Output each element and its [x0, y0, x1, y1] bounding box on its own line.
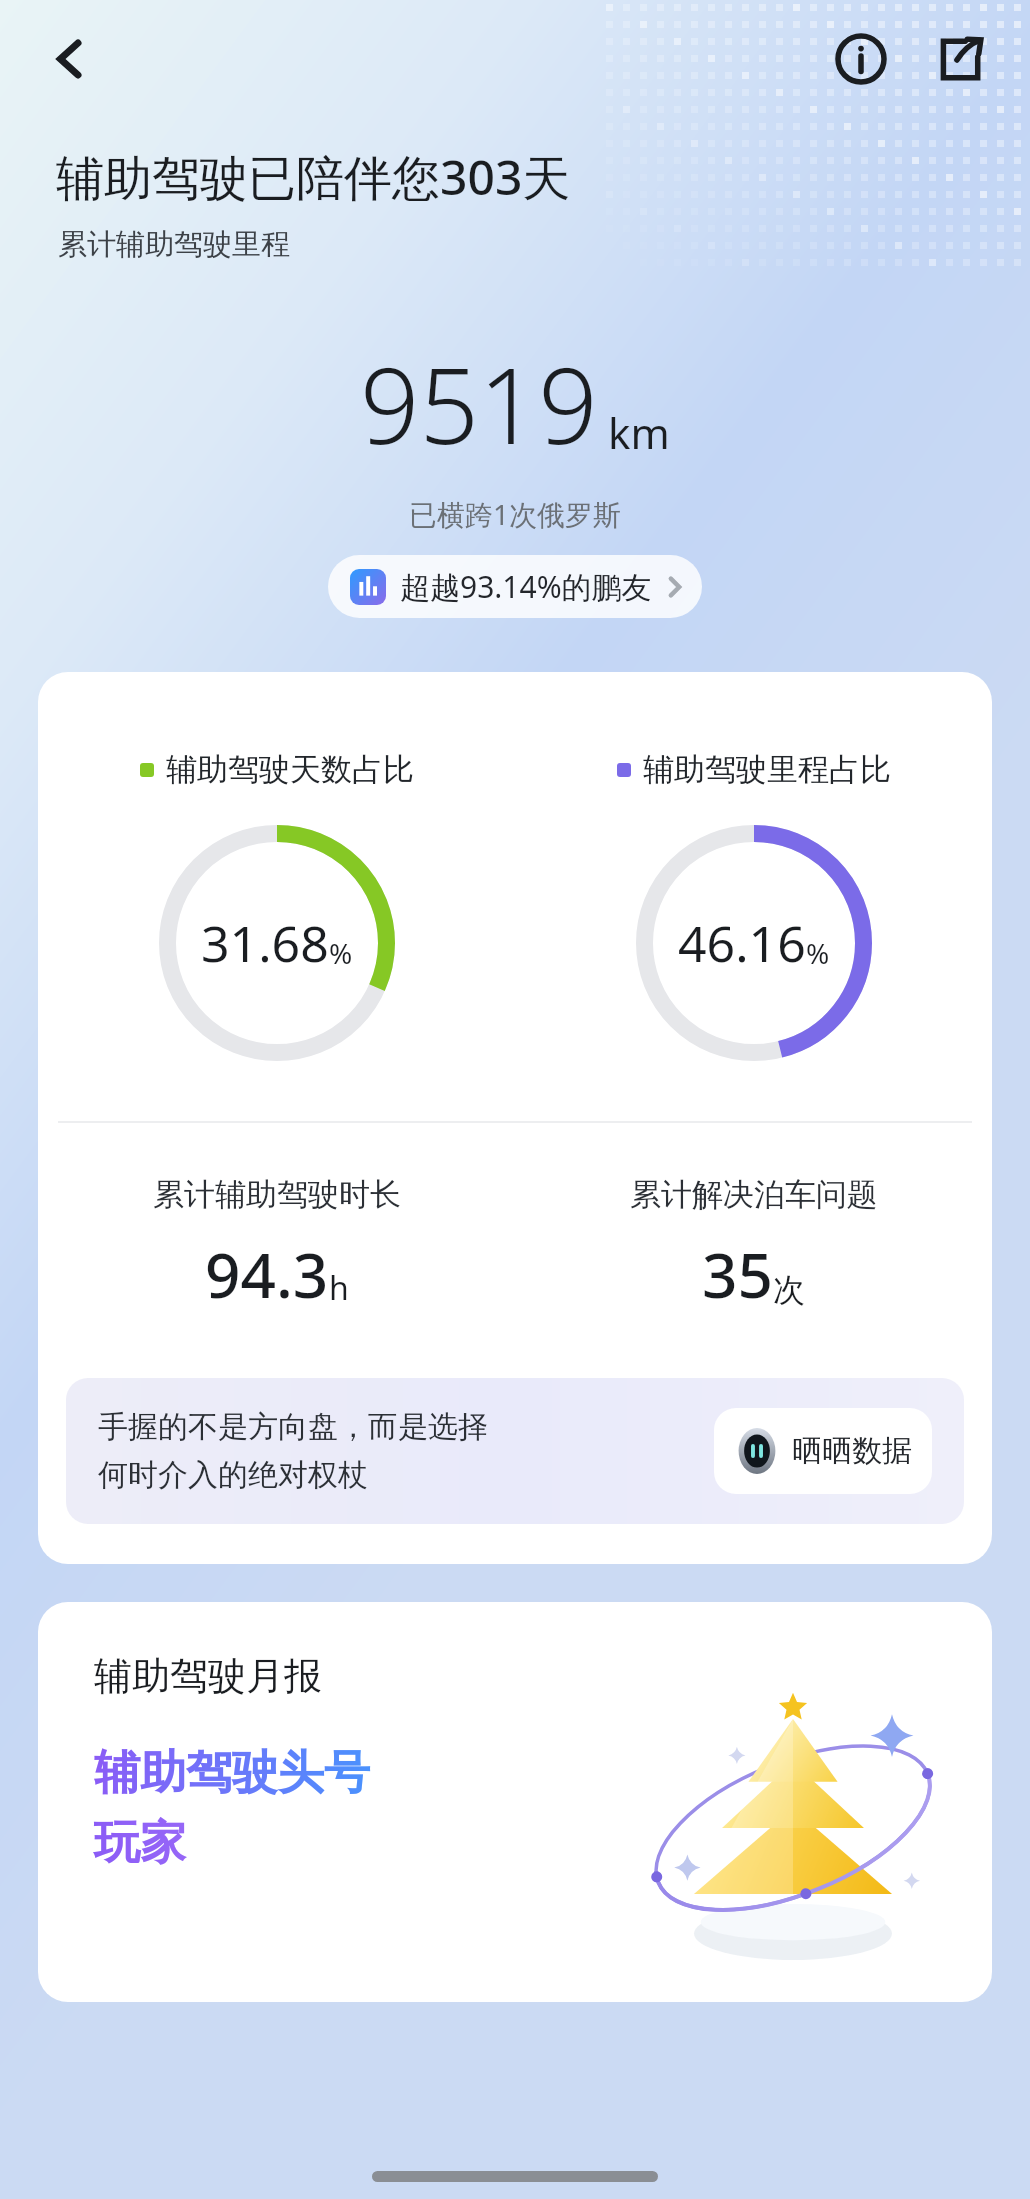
staticText: 辅助驾驶头号: [94, 1744, 370, 1802]
staticText: 超越93.14%的鹏友: [400, 566, 652, 607]
staticText: 累计辅助驾驶时长: [153, 1175, 401, 1214]
staticText: h: [329, 1266, 349, 1310]
staticText: km: [608, 404, 670, 461]
button[interactable]: 超越93.14%的鹏友: [328, 555, 702, 618]
staticText: 次: [773, 1270, 805, 1310]
button[interactable]: 晒晒数据: [714, 1408, 932, 1494]
staticText: 何时介入的绝对权杖: [98, 1456, 368, 1494]
staticText: 35: [702, 1232, 773, 1316]
button[interactable]: 辅助驾驶月报: [38, 1602, 992, 2002]
staticText: 辅助驾驶已陪伴您303天: [56, 144, 571, 210]
staticText: 玩家: [94, 1814, 186, 1872]
button[interactable]: Back: [34, 23, 106, 95]
staticText: 累计解决泊车问题: [630, 1175, 878, 1214]
staticText: 已横跨1次俄罗斯: [0, 495, 1030, 533]
staticText: 46.16: [678, 909, 806, 977]
staticText: 31.68: [201, 909, 329, 977]
button[interactable]: Share: [918, 18, 1000, 100]
staticText: 9519: [360, 333, 598, 475]
staticText: 累计辅助驾驶里程: [58, 226, 290, 263]
staticText: %: [806, 934, 830, 972]
staticText: %: [329, 934, 353, 972]
staticText: 辅助驾驶月报: [94, 1652, 322, 1700]
staticText: 晒晒数据: [792, 1432, 912, 1470]
staticText: 手握的不是方向盘，而是选择: [98, 1408, 488, 1446]
staticText: 辅助驾驶里程占比: [643, 750, 891, 789]
staticText: 辅助驾驶天数占比: [166, 750, 414, 789]
button[interactable]: Info: [820, 18, 902, 100]
staticText: 94.3: [205, 1232, 329, 1316]
